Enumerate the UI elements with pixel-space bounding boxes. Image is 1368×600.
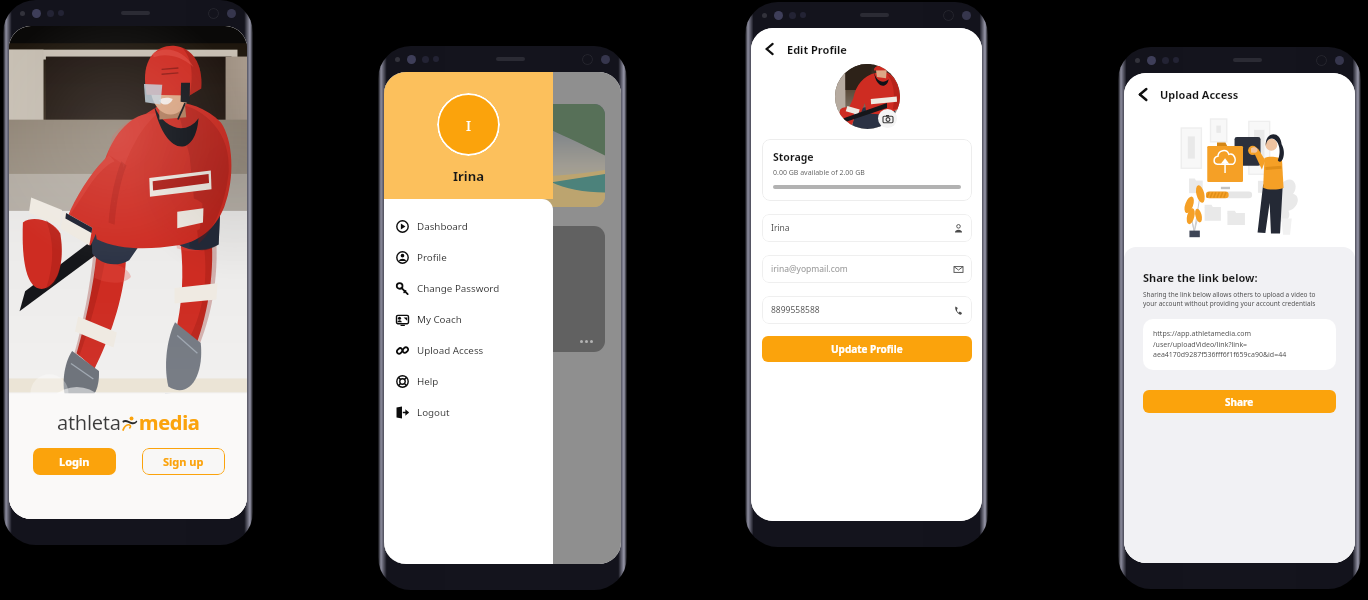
staticText: athleta (57, 409, 121, 436)
staticText: Sign up (163, 454, 204, 469)
staticText: Upload Access (417, 344, 484, 357)
staticText: Login (59, 454, 90, 469)
staticText: Logout (417, 406, 450, 419)
staticText: Profile (417, 251, 447, 264)
button[interactable]: Sign up (142, 448, 225, 475)
button[interactable]: Irina (771, 214, 963, 242)
button[interactable]: Change photo (878, 109, 897, 128)
button[interactable]: Help (396, 366, 543, 397)
staticText: Dashboard (417, 220, 468, 233)
staticText: media (139, 409, 200, 436)
button[interactable]: 8899558588 (771, 296, 963, 324)
button[interactable]: Dashboard (396, 211, 543, 242)
button[interactable]: irina@yopmail.com (771, 255, 963, 283)
button[interactable]: Upload Access (396, 335, 543, 366)
button[interactable]: Back (1132, 83, 1154, 105)
staticText: 8899558588 (771, 304, 820, 316)
staticText: irina@yopmail.com (771, 263, 848, 275)
staticText: Update Profile (831, 342, 903, 356)
button[interactable]: Profile (396, 242, 543, 273)
staticText: Irina (771, 222, 790, 234)
staticText: My Coach (417, 313, 462, 326)
button[interactable]: Share (1143, 390, 1336, 413)
button[interactable]: My Coach (396, 304, 543, 335)
staticText: Upload Access (1160, 87, 1239, 102)
staticText: Irina (453, 167, 484, 185)
staticText: I (466, 115, 472, 135)
button[interactable]: Login (33, 448, 116, 475)
staticText: Storage (773, 150, 814, 164)
staticText: https://app.athletamedia.com /user/uploa… (1153, 329, 1287, 359)
staticText: Share (1225, 395, 1254, 409)
staticText: Sharing the link below allows others to … (1143, 290, 1316, 308)
staticText: 0.00 GB available of 2.00 GB (773, 168, 865, 178)
staticText: Help (417, 375, 439, 388)
staticText: Change Password (417, 282, 500, 295)
button[interactable]: Change Password (396, 273, 543, 304)
button[interactable]: Back (759, 38, 781, 60)
button[interactable]: Update Profile (762, 336, 972, 362)
staticText: Share the link below: (1143, 270, 1258, 285)
button[interactable]: Logout (396, 397, 543, 428)
staticText: Edit Profile (787, 42, 847, 57)
